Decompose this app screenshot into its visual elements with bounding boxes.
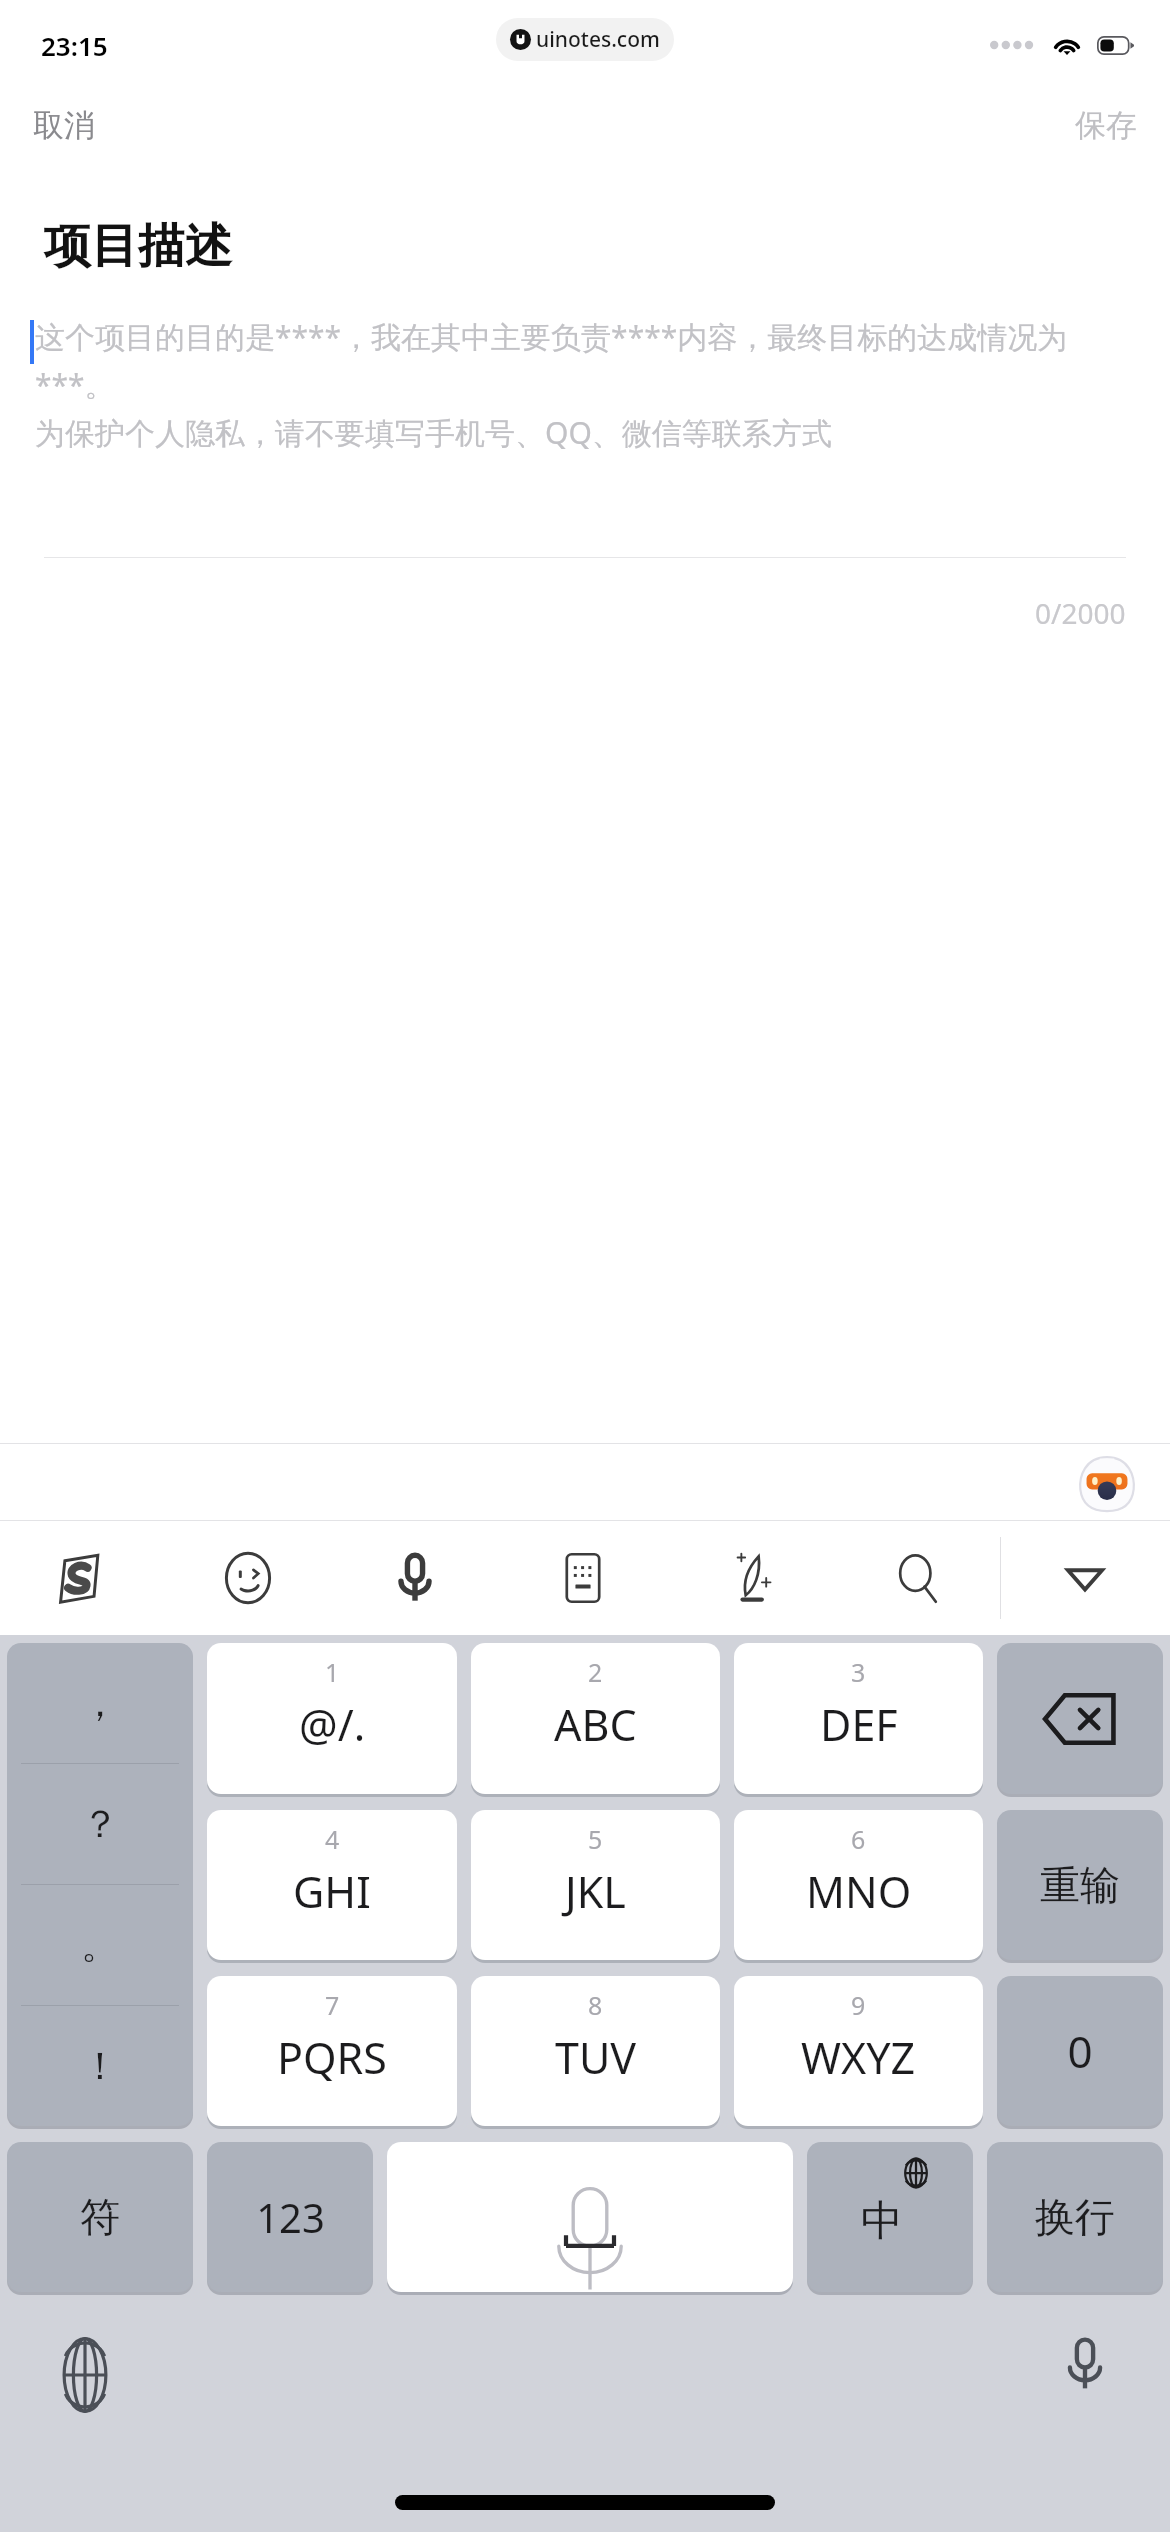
button[interactable]: 换行 (987, 2142, 1163, 2292)
button[interactable]: Switch input language (40, 2330, 130, 2420)
staticText: 6 (851, 1822, 866, 1856)
staticText: 9 (851, 1988, 866, 2022)
staticText: 7 (325, 1988, 340, 2022)
staticText: 0/2000 (1035, 594, 1126, 632)
staticText: @/. (299, 1695, 366, 1754)
button[interactable]: 保存 (1042, 96, 1170, 155)
staticText: 换行 (1035, 2192, 1115, 2242)
button[interactable]: ？ (7, 1764, 193, 1884)
staticText: ABC (554, 1695, 637, 1754)
staticText: uinotes.com (536, 25, 660, 54)
button[interactable]: 123 (207, 2142, 373, 2292)
staticText: WXYZ (801, 2028, 916, 2087)
button[interactable]: Delete (997, 1643, 1163, 1794)
staticText: 。 (81, 1921, 119, 1969)
button[interactable]: 。 (7, 1885, 193, 2005)
staticText: 8 (588, 1988, 603, 2022)
staticText: ？ (81, 1800, 119, 1848)
staticText: 2 (588, 1655, 603, 1689)
button[interactable]: 1 (207, 1643, 457, 1794)
staticText: 1 (325, 1655, 340, 1689)
button[interactable]: Keyboard (541, 1521, 625, 1635)
button[interactable]: Voice input (373, 1521, 457, 1635)
staticText: 3 (851, 1655, 866, 1689)
button[interactable]: 3 (734, 1643, 983, 1794)
button[interactable]: Dictation (1040, 2330, 1130, 2420)
staticText: 中 (861, 2195, 903, 2248)
button[interactable]: Space (387, 2142, 793, 2292)
staticText: 项目描述 (44, 217, 232, 276)
button[interactable]: 9 (734, 1976, 983, 2126)
staticText: TUV (555, 2028, 637, 2087)
staticText: 23:15 (41, 28, 108, 63)
button[interactable]: 6 (734, 1810, 983, 1960)
button[interactable]: Emoji (206, 1521, 290, 1635)
staticText: ， (81, 1679, 119, 1727)
button[interactable]: 取消 (0, 96, 128, 155)
staticText: MNO (806, 1862, 912, 1921)
button[interactable]: ， (7, 1643, 193, 1763)
button[interactable]: 5 (471, 1810, 720, 1960)
staticText: ！ (81, 2042, 119, 2090)
button[interactable]: 4 (207, 1810, 457, 1960)
button[interactable]: 重输 (997, 1810, 1163, 1960)
staticText: GHI (293, 1862, 371, 1921)
button[interactable]: Sogou (38, 1521, 122, 1635)
staticText: 重输 (1040, 1860, 1120, 1910)
staticText: 符 (80, 2192, 120, 2242)
button[interactable]: Handwriting (708, 1521, 792, 1635)
button[interactable]: 8 (471, 1976, 720, 2126)
staticText: JKL (565, 1862, 626, 1921)
staticText: PQRS (277, 2028, 387, 2087)
button[interactable]: ！ (7, 2006, 193, 2126)
staticText: 保存 (1075, 106, 1137, 145)
button[interactable]: 符 (7, 2142, 193, 2292)
button[interactable]: Search (876, 1521, 960, 1635)
button[interactable]: 7 (207, 1976, 457, 2126)
staticText: 取消 (33, 106, 95, 145)
button[interactable]: Switch language (807, 2142, 973, 2292)
staticText: 0 (1067, 2021, 1093, 2081)
staticText: 123 (256, 2190, 325, 2244)
staticText: 5 (588, 1822, 603, 1856)
button[interactable]: Sogou assistant (1076, 1451, 1138, 1513)
staticText: 这个项目的目的是****，我在其中主要负责****内容，最终目标的达成情况为**… (35, 316, 1134, 453)
button[interactable]: Hide keyboard (1043, 1521, 1127, 1635)
button[interactable]: 2 (471, 1643, 720, 1794)
staticText: 4 (325, 1822, 340, 1856)
staticText: DEF (820, 1695, 898, 1754)
button[interactable]: 0 (997, 1976, 1163, 2126)
